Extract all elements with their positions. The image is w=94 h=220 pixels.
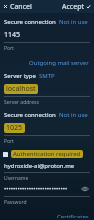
- staticText: Port: [4, 45, 14, 52]
- button[interactable]: 1145: [0, 30, 94, 54]
- staticText: Cancel: [10, 2, 32, 11]
- button[interactable]: hydroxide-ai@proton.me: [0, 162, 94, 184]
- staticText: Secure connection: [4, 18, 56, 26]
- staticText: Port: [4, 138, 14, 145]
- button[interactable]: 1025: [0, 123, 94, 147]
- staticText: Not in use: [59, 111, 88, 119]
- staticText: hydroxide-ai@proton.me: [4, 162, 75, 170]
- staticText: Certificates: [57, 213, 89, 218]
- button[interactable]: localhost: [0, 84, 94, 108]
- staticText: ••••••••••••••••••••••••••••: [4, 185, 68, 193]
- button[interactable]: Secure connection: [0, 108, 94, 122]
- staticText: Authentication required: [13, 150, 81, 158]
- staticText: 1145: [4, 30, 21, 40]
- button[interactable]: Secure connection: [0, 15, 94, 29]
- staticText: Password: [4, 199, 27, 206]
- staticText: Accept: [62, 2, 84, 11]
- staticText: Username: [4, 175, 29, 182]
- staticText: Not in use: [59, 18, 88, 26]
- staticText: Server type: [4, 72, 36, 80]
- staticText: 1025: [6, 123, 23, 133]
- staticText: Secure connection: [4, 111, 56, 119]
- staticText: Server address: [4, 99, 39, 106]
- staticText: Outgoing mail server: [29, 59, 89, 67]
- button[interactable]: Show password: [80, 184, 90, 194]
- button[interactable]: Cancel: [0, 0, 35, 13]
- button[interactable]: ••••••••••••••••••••••••••••: [0, 184, 94, 208]
- staticText: localhost: [6, 84, 36, 94]
- button[interactable]: Server type: [0, 69, 94, 83]
- button[interactable]: Accept: [59, 0, 94, 13]
- button[interactable]: Authentication required: [0, 148, 94, 160]
- staticText: SMTP: [39, 72, 55, 80]
